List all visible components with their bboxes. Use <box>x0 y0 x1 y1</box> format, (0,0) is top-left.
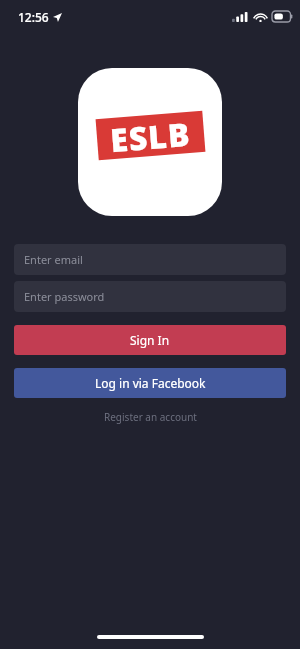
staticText: Enter password <box>24 289 105 304</box>
button[interactable]: Enter email <box>14 244 286 275</box>
staticText: Sign In <box>130 332 170 348</box>
button[interactable]: Register an account <box>0 407 300 427</box>
button[interactable]: Sign In <box>14 325 286 355</box>
staticText: 12:56 <box>18 9 49 25</box>
staticText: Enter email <box>24 252 83 267</box>
button[interactable]: Log in via Facebook <box>14 368 286 398</box>
staticText: ESLB <box>108 112 192 159</box>
staticText: Log in via Facebook <box>95 375 206 391</box>
staticText: Register an account <box>104 410 197 424</box>
button[interactable]: Enter password <box>14 281 286 312</box>
